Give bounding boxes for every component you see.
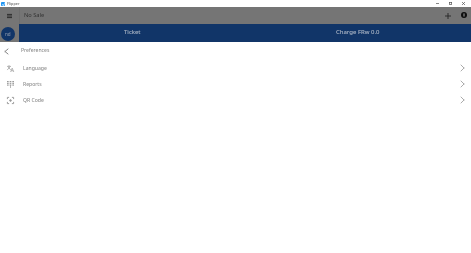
button[interactable]: Account (456, 7, 471, 24)
button[interactable]: Close (457, 0, 470, 7)
staticText: QR Code (23, 97, 44, 104)
button[interactable]: Reports (0, 76, 471, 92)
other: Back (0, 42, 13, 60)
staticText: Flipper (7, 1, 20, 6)
button[interactable]: Ticket (19, 24, 245, 42)
button[interactable]: Language (0, 60, 471, 76)
button[interactable]: Maximize (444, 0, 457, 7)
staticText: Language (23, 65, 47, 72)
staticText: Ticket (124, 28, 141, 36)
staticText: Preferences (21, 47, 50, 54)
button[interactable]: nd (1, 27, 15, 41)
button[interactable]: Add (439, 7, 456, 24)
staticText: No Sale (24, 11, 45, 19)
staticText: Charge FRw 0.0 (336, 28, 380, 36)
staticText: nd (5, 31, 11, 37)
button[interactable]: Charge FRw 0.0 (245, 24, 471, 42)
button[interactable]: QR Code (0, 92, 471, 108)
staticText: Reports (23, 81, 42, 88)
button[interactable]: Back (0, 42, 471, 60)
button[interactable]: Open navigation menu (0, 7, 19, 24)
button[interactable]: Minimize (431, 0, 444, 7)
